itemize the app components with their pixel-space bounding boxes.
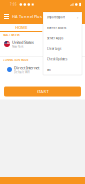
button[interactable]: Check Updates [43,54,82,64]
staticText: LOGS [59,25,69,30]
button[interactable]: LOGS [42,24,85,32]
button[interactable]: Direct Internet [0,63,85,75]
staticText: START [36,89,48,94]
staticText: Direct Internet [14,65,39,70]
button[interactable]: Banner Access [43,22,82,33]
button[interactable]: Server Apps [43,33,82,43]
staticText: Default WiFi [14,70,30,74]
staticText: Banner Access [47,26,66,29]
staticText: › [77,15,78,20]
staticText: New York [12,45,23,48]
button[interactable]: HOME [0,24,42,32]
staticText: Exit [47,68,51,71]
button[interactable]: START [4,86,81,96]
staticText: HOME [15,25,27,30]
staticText: HA Tunnel Plus [12,14,42,19]
button[interactable]: Menu [1,9,12,24]
staticText: Server Apps [47,36,63,40]
staticText: CONNECTION MODE [3,58,28,62]
staticText: Import/Export [47,15,65,19]
staticText: Clear Logs [47,47,61,50]
button[interactable]: Exit [43,64,82,75]
staticText: Check Updates [47,57,67,61]
button[interactable]: Clear Logs [43,43,82,54]
staticText: SELECT SERVER [3,33,20,37]
button[interactable]: United States [0,38,85,50]
staticText: 7:05 [10,3,17,6]
button[interactable]: Import/Export [43,12,82,22]
staticText: United States [12,40,34,45]
